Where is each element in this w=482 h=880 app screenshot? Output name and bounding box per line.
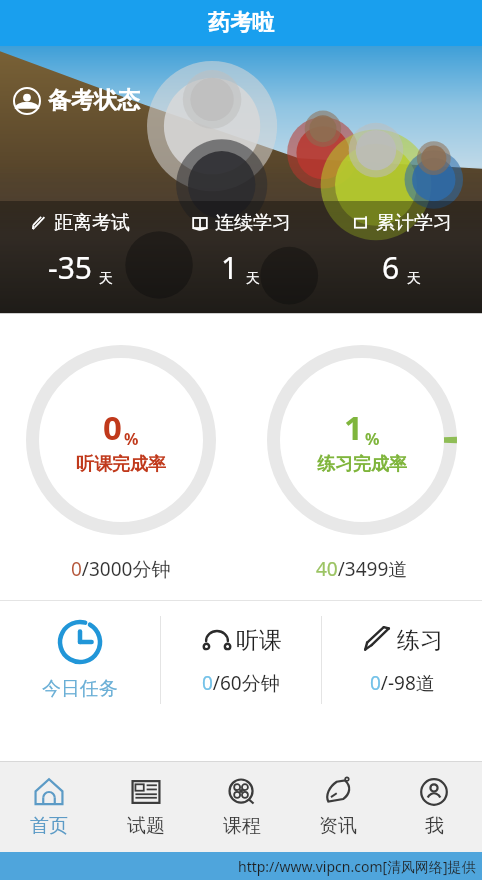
staticText: 练习完成率 (317, 453, 407, 476)
staticText: 天 (246, 270, 260, 288)
other: 今日任务 (57, 619, 103, 665)
button[interactable]: 我 (386, 762, 482, 852)
staticText: 课程 (223, 814, 261, 838)
staticText: 我 (425, 814, 444, 838)
staticText: 1 (344, 405, 363, 450)
button[interactable]: 首页 (0, 762, 97, 852)
staticText: 练习 (397, 626, 443, 655)
button[interactable]: 资讯 (290, 762, 386, 852)
staticText: 听课 (236, 626, 282, 655)
staticText: 0 (103, 405, 122, 450)
staticText: 累计学习 (376, 211, 452, 235)
staticText: http://www.vipcn.com[清风网络]提供 (238, 857, 476, 876)
staticText: 天 (407, 270, 421, 288)
staticText: % (365, 428, 380, 450)
button[interactable]: 试题 (97, 762, 194, 852)
staticText: 首页 (30, 814, 68, 838)
staticText: 听课完成率 (76, 453, 166, 476)
button[interactable]: 1 (241, 340, 482, 540)
staticText: 6 (382, 247, 400, 288)
button[interactable]: 练习 (322, 601, 482, 719)
staticText: 试题 (127, 814, 165, 838)
staticText: 距离考试 (54, 211, 130, 235)
staticText: -35 (48, 247, 92, 288)
staticText: 连续学习 (215, 211, 291, 235)
button[interactable]: 0 (0, 340, 241, 540)
staticText: 1 (221, 247, 239, 288)
staticText: 资讯 (319, 814, 357, 838)
staticText: % (124, 428, 139, 450)
staticText: 今日任务 (42, 677, 118, 701)
staticText: 备考状态 (48, 86, 140, 115)
button[interactable]: 今日任务 (0, 601, 160, 719)
button[interactable]: 课程 (194, 762, 290, 852)
staticText: 0/60分钟 (202, 670, 280, 696)
staticText: 40/3499道 (316, 556, 408, 582)
button[interactable]: 听课 (161, 601, 321, 719)
staticText: 天 (99, 270, 113, 288)
staticText: 0/-98道 (370, 670, 435, 696)
staticText: 药考啦 (208, 9, 274, 37)
staticText: 0/3000分钟 (71, 556, 171, 582)
